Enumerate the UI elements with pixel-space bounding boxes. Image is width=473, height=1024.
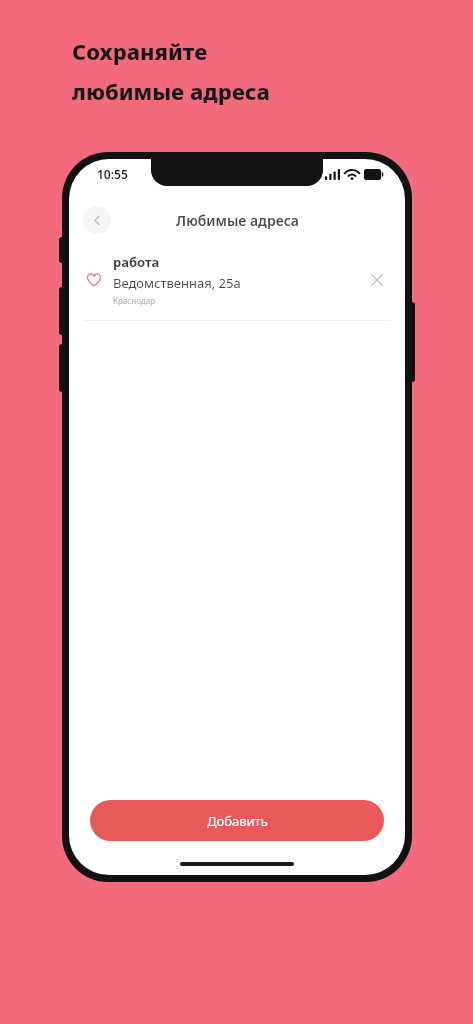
staticText: Ведомственная, 25а (113, 274, 241, 292)
staticText: любимые адреса (72, 76, 270, 106)
staticText: Любимые адреса (176, 211, 299, 230)
staticText: работа (113, 253, 160, 271)
staticText: Краснодар (113, 295, 156, 306)
staticText: 10:55 (97, 166, 128, 182)
button[interactable]: Remove address (365, 268, 389, 292)
staticText: Добавить (207, 812, 268, 830)
button[interactable]: Добавить (90, 800, 384, 841)
staticText: Сохраняйте (72, 36, 208, 66)
button[interactable]: работа (69, 251, 405, 314)
button[interactable]: Back (83, 206, 111, 234)
